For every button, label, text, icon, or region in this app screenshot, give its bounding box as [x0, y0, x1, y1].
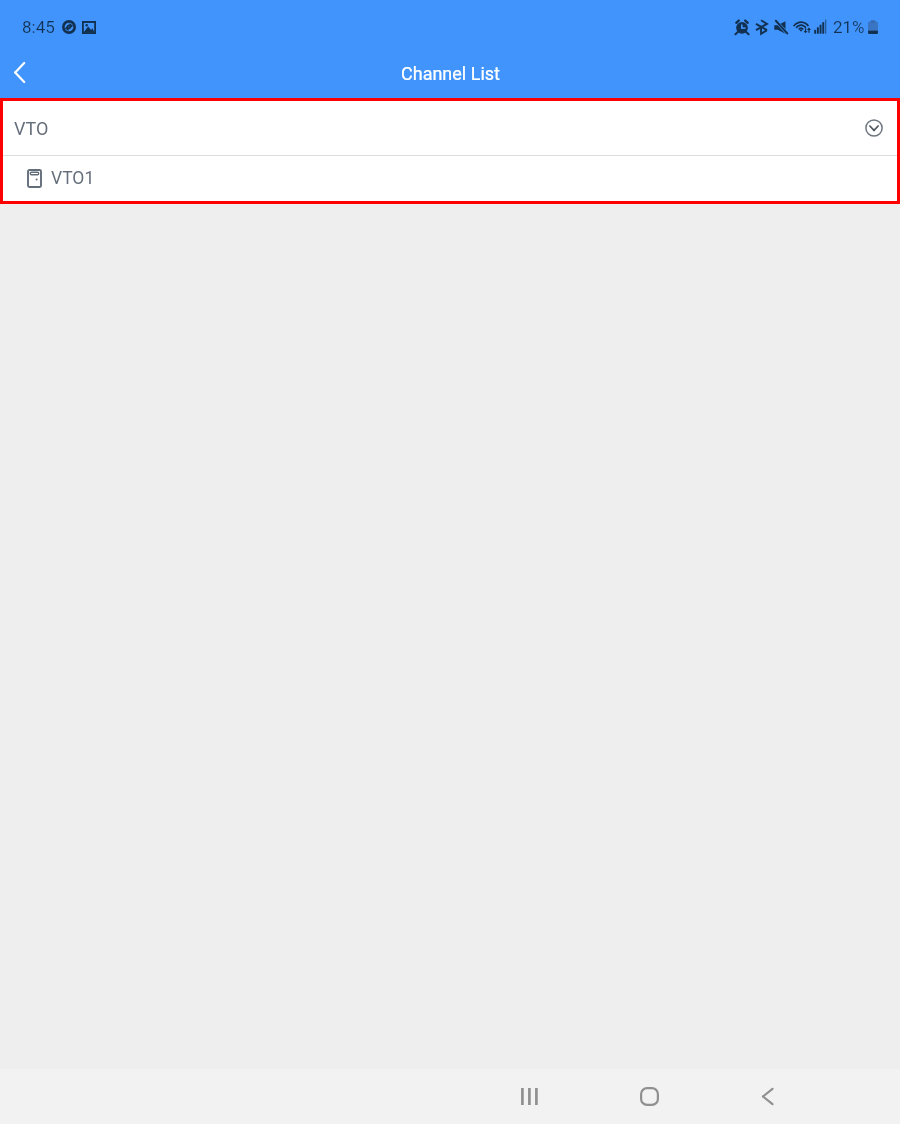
- button[interactable]: Expand group: [855, 101, 893, 155]
- staticText: 21%: [833, 17, 865, 37]
- staticText: 8:45: [22, 17, 55, 37]
- button[interactable]: VTO: [3, 101, 897, 155]
- button[interactable]: VTO1: [3, 156, 897, 201]
- staticText: VTO: [14, 118, 49, 139]
- staticText: Channel List: [401, 63, 500, 84]
- button[interactable]: Recent apps: [502, 1069, 558, 1124]
- button[interactable]: Home: [621, 1069, 677, 1124]
- staticText: VTO1: [51, 168, 95, 189]
- button[interactable]: Back: [0, 47, 39, 97]
- button[interactable]: Back: [739, 1069, 795, 1124]
